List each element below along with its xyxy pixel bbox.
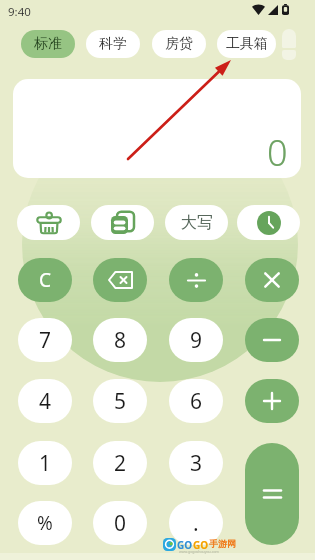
staticText: 5 [114, 387, 127, 416]
staticText: 房贷 [165, 35, 193, 53]
staticText: 8 [114, 326, 127, 355]
button[interactable]: 1 [18, 441, 72, 485]
staticText: 2 [114, 449, 127, 478]
button[interactable]: 8 [93, 318, 147, 362]
button[interactable]: 标准 [21, 30, 75, 58]
staticText: www.gogoshouyou.com [179, 549, 219, 554]
staticText: 大写 [181, 213, 213, 233]
staticText: 标准 [34, 35, 62, 53]
button[interactable]: Multiply [245, 258, 299, 302]
staticText: 科学 [99, 35, 127, 53]
button[interactable]: Plus [245, 379, 299, 423]
button[interactable]: Backspace [93, 258, 147, 302]
button[interactable]: Copy [91, 205, 154, 240]
button[interactable]: 3 [169, 441, 223, 485]
button[interactable]: 7 [18, 318, 72, 362]
staticText: % [37, 510, 53, 536]
button[interactable]: C [18, 258, 72, 302]
staticText: 7 [39, 326, 52, 355]
button[interactable]: 2 [93, 441, 147, 485]
button[interactable]: Clear [17, 205, 80, 240]
staticText: 6 [190, 387, 203, 416]
button[interactable]: 9 [169, 318, 223, 362]
button[interactable]: 科学 [86, 30, 140, 58]
staticText: . [193, 509, 199, 538]
staticText: 手游网 [209, 538, 236, 549]
staticText: 4 [39, 387, 52, 416]
staticText: C [39, 267, 52, 293]
button[interactable]: 房贷 [152, 30, 206, 58]
staticText: 0 [114, 509, 127, 538]
staticText: 9 [190, 326, 203, 355]
button[interactable]: . [169, 501, 223, 545]
staticText: 9:40 [8, 4, 31, 20]
button[interactable]: 0 [13, 79, 301, 178]
button[interactable]: 大写 [165, 205, 228, 240]
staticText: GO [193, 538, 209, 552]
staticText: 0 [267, 128, 288, 177]
staticText: 3 [190, 449, 203, 478]
button[interactable]: Divide [169, 258, 223, 302]
button[interactable]: 5 [93, 379, 147, 423]
button[interactable]: History [237, 205, 300, 240]
button[interactable]: 6 [169, 379, 223, 423]
button[interactable]: 4 [18, 379, 72, 423]
button[interactable]: 0 [93, 501, 147, 545]
staticText: GO [177, 538, 193, 552]
button[interactable]: % [18, 501, 72, 545]
button[interactable]: Minus [245, 318, 299, 362]
button[interactable]: Equals [245, 443, 299, 545]
staticText: 1 [39, 449, 52, 478]
button[interactable]: 工具箱 [217, 30, 276, 58]
button[interactable]: More tabs [282, 29, 296, 48]
staticText: 工具箱 [226, 35, 268, 53]
